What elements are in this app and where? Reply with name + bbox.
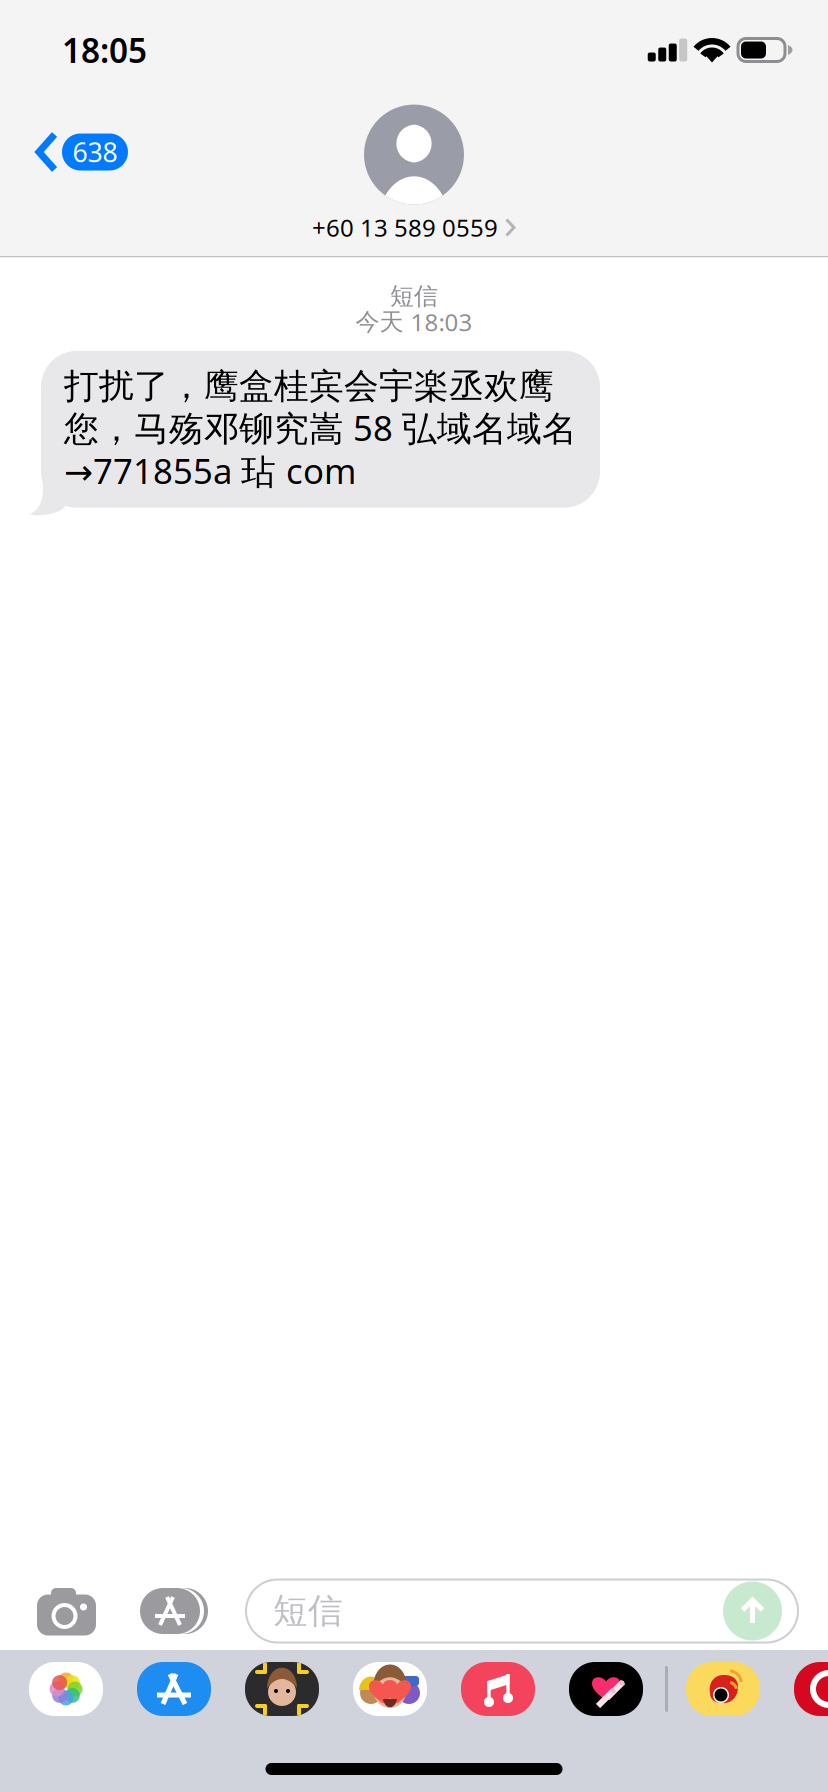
button[interactable]: Music <box>461 1662 535 1716</box>
staticText: 短信 <box>390 281 438 311</box>
button[interactable]: Photos <box>29 1662 103 1716</box>
button[interactable]: Send <box>723 1581 782 1640</box>
staticText: +60 13 589 0559 <box>312 212 498 243</box>
staticText: 短信 <box>273 1590 343 1632</box>
staticText: 今天 <box>355 307 403 337</box>
button[interactable]: App Store <box>137 1662 211 1716</box>
button[interactable]: Weibo <box>686 1662 760 1716</box>
staticText: →771855a 玷 com <box>64 447 356 494</box>
staticText: 打扰了，鹰盒桂宾会宇楽丞欢鹰 <box>64 365 554 407</box>
staticText: 您，马殇邓铆究嵩 58 弘域名域名 <box>64 404 577 450</box>
staticText: 638 <box>72 134 117 170</box>
button[interactable]: Digital Touch <box>569 1662 643 1716</box>
button[interactable]: Camera <box>0 1585 107 1637</box>
button[interactable]: 638 <box>0 123 128 181</box>
button[interactable]: Memoji <box>245 1662 319 1716</box>
staticText: 18:05 <box>62 28 147 72</box>
button[interactable]: More Apps <box>794 1662 828 1716</box>
staticText: 18:03 <box>410 306 472 338</box>
button[interactable]: Memoji Stickers <box>353 1662 427 1716</box>
button[interactable]: App Store <box>107 1585 215 1637</box>
